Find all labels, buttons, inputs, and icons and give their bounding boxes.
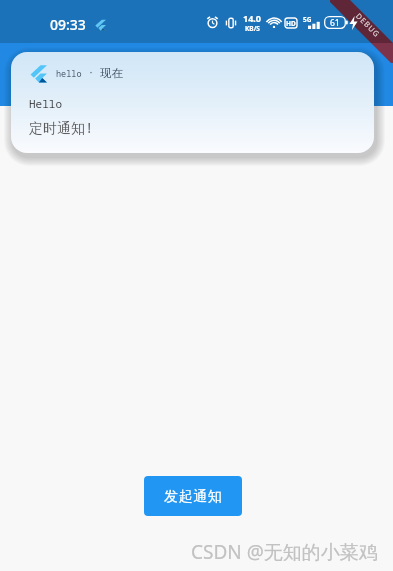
staticText: 09:33 [50, 15, 86, 34]
staticText: HD [286, 19, 296, 28]
button[interactable]: hello [11, 52, 374, 153]
staticText: · [88, 65, 94, 79]
staticText: Hello [29, 96, 62, 111]
staticText: 现在 [100, 66, 123, 80]
button[interactable]: 发起通知 [144, 476, 242, 516]
staticText: 定时通知! [29, 118, 94, 137]
staticText: KB/S [245, 24, 260, 33]
staticText: 5G [303, 15, 312, 24]
staticText: hello [56, 68, 82, 80]
staticText: 发起通知 [164, 488, 223, 506]
staticText: 61 [330, 17, 340, 29]
staticText: 14.0 [243, 12, 261, 24]
staticText: DEBUG [354, 11, 382, 39]
staticText: CSDN @无知的小菜鸡 [191, 539, 378, 565]
